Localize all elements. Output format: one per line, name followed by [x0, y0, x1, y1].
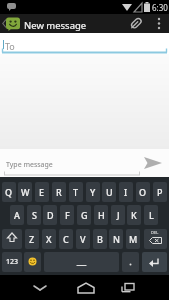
button[interactable] [152, 16, 166, 31]
button[interactable]: K [127, 205, 141, 225]
staticText: P [157, 186, 163, 198]
button[interactable]: G [77, 205, 91, 225]
button[interactable]: W [18, 182, 32, 202]
staticText: D [47, 209, 54, 221]
staticText: 6:30 [152, 2, 168, 13]
button[interactable]: B [93, 229, 107, 249]
staticText: W [21, 186, 30, 198]
button[interactable] [6, 17, 20, 31]
button[interactable] [142, 156, 164, 171]
staticText: O [139, 186, 147, 198]
button[interactable]: N [109, 229, 123, 249]
staticText: X [46, 233, 52, 245]
staticText: 123 [6, 257, 19, 267]
button[interactable]: To [0, 33, 169, 54]
button[interactable]: H [94, 205, 108, 225]
button[interactable] [44, 252, 119, 272]
button[interactable] [30, 277, 50, 297]
staticText: Y [90, 186, 96, 198]
button[interactable]: R [52, 182, 66, 202]
button[interactable]: I [119, 182, 133, 202]
button[interactable]: F [60, 205, 74, 225]
button[interactable]: A [10, 205, 24, 225]
button[interactable] [128, 16, 144, 31]
staticText: U [106, 186, 113, 198]
staticText: J [117, 209, 120, 221]
button[interactable] [2, 229, 22, 249]
button[interactable] [24, 252, 41, 272]
staticText: E [39, 186, 45, 198]
staticText: R [56, 186, 62, 198]
button[interactable]: DEL [144, 229, 167, 249]
staticText: G [81, 209, 88, 221]
staticText: H [98, 209, 105, 221]
button[interactable]: L [144, 205, 158, 225]
button[interactable] [74, 277, 98, 297]
staticText: A [14, 209, 20, 221]
button[interactable]: C [59, 229, 73, 249]
button[interactable]: Y [86, 182, 100, 202]
button[interactable] [122, 252, 139, 272]
button[interactable]: Z [25, 229, 39, 249]
button[interactable] [117, 277, 139, 297]
button[interactable]: X [42, 229, 56, 249]
button[interactable]: O [136, 182, 150, 202]
button[interactable]: P [153, 182, 167, 202]
button[interactable]: V [76, 229, 90, 249]
staticText: N [113, 233, 120, 245]
staticText: I [124, 186, 128, 198]
staticText: L [149, 209, 154, 221]
staticText: B [97, 233, 103, 245]
staticText: Z [29, 233, 35, 245]
button[interactable]: M [126, 229, 140, 249]
button[interactable]: T [69, 182, 83, 202]
button[interactable]: U [102, 182, 116, 202]
button[interactable]: E [35, 182, 49, 202]
button[interactable]: D [43, 205, 57, 225]
staticText: F [65, 209, 70, 221]
staticText: M [129, 233, 138, 245]
staticText: Q [5, 186, 13, 198]
staticText: V [80, 233, 86, 245]
staticText: S [32, 209, 37, 221]
staticText: K [131, 209, 137, 221]
button[interactable]: Q [2, 182, 16, 202]
button[interactable]: S [27, 205, 41, 225]
button[interactable]: 123 [2, 252, 22, 272]
button[interactable]: J [111, 205, 125, 225]
button[interactable] [142, 252, 167, 272]
staticText: DEL [151, 230, 159, 235]
staticText: To [5, 40, 15, 52]
staticText: New message [24, 19, 87, 32]
staticText: C [63, 233, 69, 245]
button[interactable]: Type message [6, 160, 53, 170]
staticText: T [73, 186, 79, 198]
